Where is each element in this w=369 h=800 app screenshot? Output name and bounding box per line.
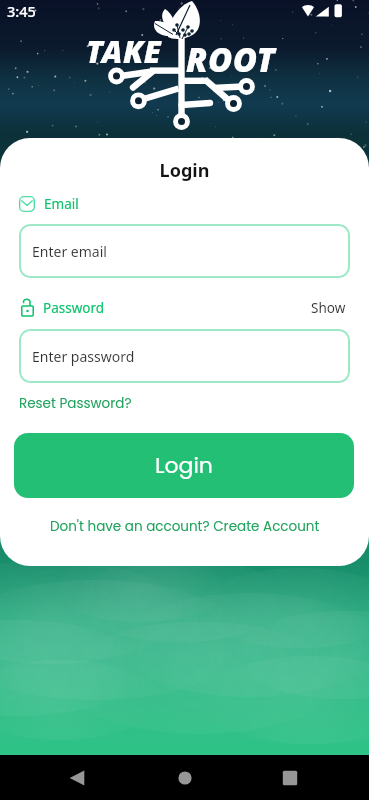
button[interactable]: Login	[14, 433, 354, 498]
button[interactable]: Enter email	[19, 224, 350, 278]
button[interactable]: Back	[55, 756, 99, 800]
staticText: Login	[0, 158, 369, 183]
button[interactable]: Recent apps	[268, 756, 312, 800]
staticText: Login	[155, 450, 213, 481]
staticText: TAKE	[86, 30, 162, 72]
button[interactable]: Show	[311, 299, 346, 317]
staticText: Email	[44, 195, 79, 213]
staticText: Don't have an account? Create Account	[50, 517, 320, 536]
button[interactable]: Enter password	[19, 329, 350, 383]
staticText: 3:45	[7, 1, 36, 21]
staticText: Enter password	[32, 347, 135, 366]
staticText: Enter email	[32, 242, 107, 261]
button[interactable]: Email	[19, 195, 79, 213]
staticText: Show	[311, 299, 346, 317]
staticText: Reset Password?	[19, 394, 132, 413]
button[interactable]: Home	[163, 756, 207, 800]
button[interactable]: Reset Password?	[19, 394, 132, 413]
staticText: Password	[43, 299, 105, 317]
staticText: ROOT	[186, 37, 276, 82]
button[interactable]: Don't have an account? Create Account	[0, 517, 369, 536]
